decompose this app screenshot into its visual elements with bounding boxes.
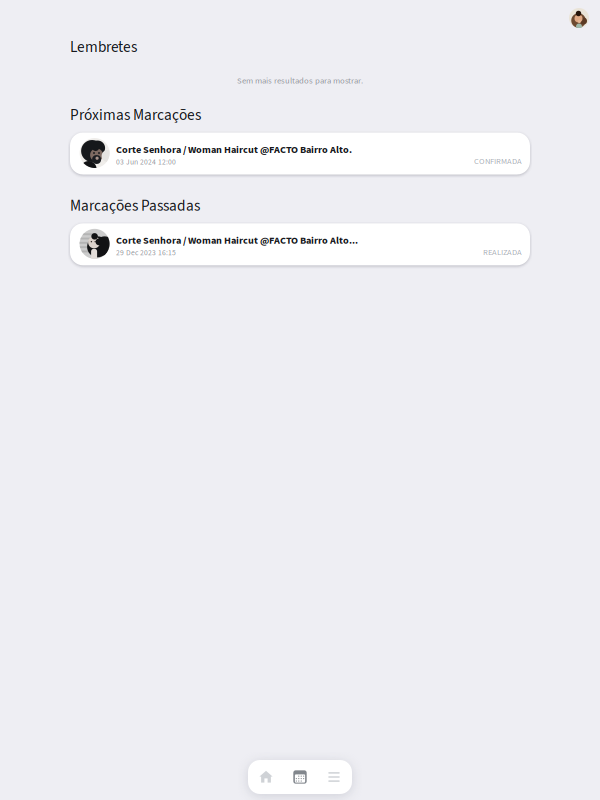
staticText: Sem mais resultados para mostrar. [237, 74, 363, 87]
staticText: Corte Senhora / Woman Haircut @FACTO Bai… [116, 142, 352, 157]
staticText: Marcações Passadas [70, 195, 200, 217]
staticText: Corte Senhora / Woman Haircut @FACTO Bai… [116, 233, 358, 248]
button[interactable]: Corte Senhora / Woman Haircut @FACTO Bai… [70, 223, 530, 265]
staticText: Próximas Marcações [70, 104, 201, 126]
button[interactable]: Home [249, 760, 283, 794]
staticText: Lembretes [70, 36, 137, 58]
staticText: REALIZADA [483, 246, 522, 258]
button[interactable]: Corte Senhora / Woman Haircut @FACTO Bai… [70, 132, 530, 174]
button[interactable]: Appointments [283, 760, 317, 794]
staticText: 29 Dec 2023 16:15 [116, 247, 176, 258]
staticText: 03 Jun 2024 12:00 [116, 157, 176, 167]
staticText: CONFIRMADA [474, 155, 522, 167]
button[interactable]: Profile [0, 0, 589, 28]
button[interactable]: Menu [317, 760, 351, 794]
